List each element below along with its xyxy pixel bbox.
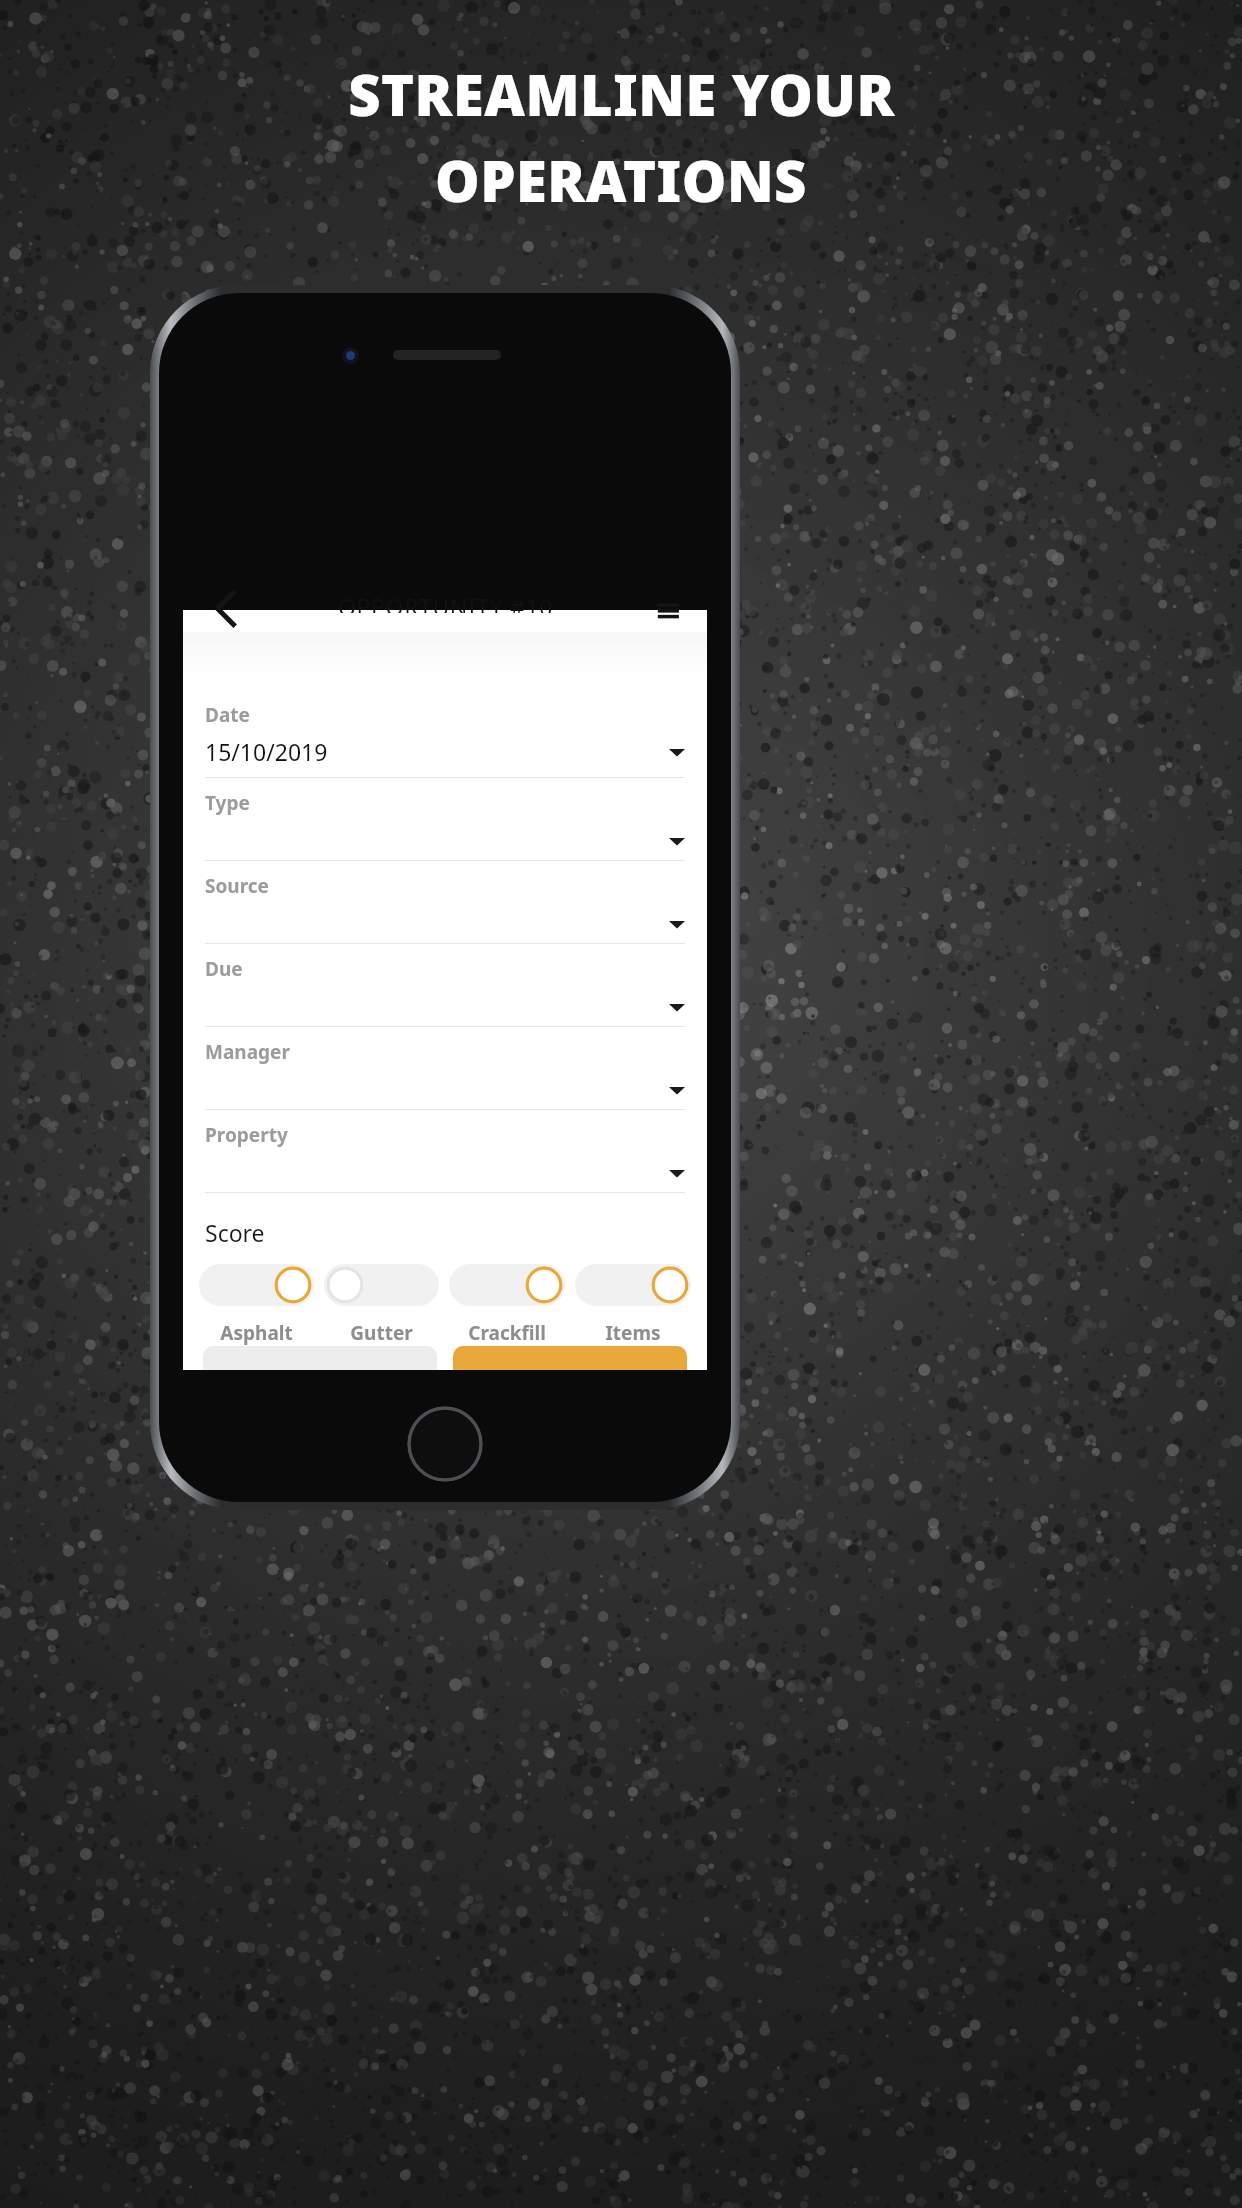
staticText: STREAMLINE YOUR — [348, 56, 895, 132]
staticText: Property — [205, 1122, 288, 1148]
button[interactable]: Back — [205, 610, 239, 632]
button[interactable]: Date — [183, 690, 707, 778]
staticText: Due — [205, 956, 243, 982]
staticText: Items — [605, 1320, 661, 1346]
button[interactable]: Crackfill — [449, 1264, 565, 1346]
staticText: OPPORTUNITY #10 — [338, 591, 553, 613]
button[interactable]: Gutter — [324, 1264, 439, 1346]
button[interactable]: Property — [183, 1110, 707, 1193]
staticText: 15/10/2019 — [205, 736, 328, 767]
staticText: Asphalt — [220, 1320, 293, 1346]
button[interactable]: Manager — [183, 1027, 707, 1110]
staticText: Crackfill — [468, 1320, 546, 1346]
staticText: Date — [205, 702, 250, 728]
button[interactable]: Items — [575, 1264, 691, 1346]
staticText: OPERATIONS — [435, 142, 807, 218]
staticText: Score — [205, 1217, 265, 1248]
staticText: Source — [205, 873, 269, 899]
button[interactable]: Source — [183, 861, 707, 944]
button[interactable]: Asphalt — [199, 1264, 314, 1346]
button[interactable]: Type — [183, 778, 707, 861]
button[interactable] — [453, 1346, 687, 1370]
button[interactable]: Due — [183, 944, 707, 1027]
staticText: Manager — [205, 1039, 290, 1065]
staticText: Type — [205, 790, 250, 816]
button[interactable]: Menu — [651, 610, 685, 632]
staticText: Gutter — [350, 1320, 413, 1346]
button[interactable]: Home — [407, 1406, 483, 1482]
